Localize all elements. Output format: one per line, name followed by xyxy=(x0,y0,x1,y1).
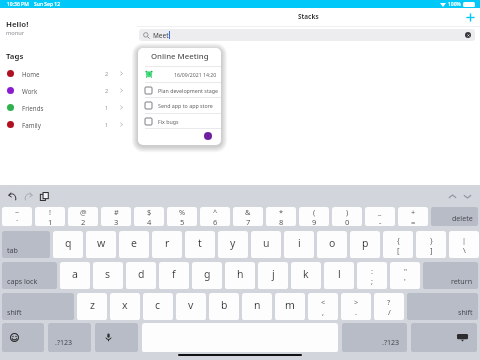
button[interactable]: @ xyxy=(68,207,98,226)
staticText: 2 xyxy=(105,70,109,78)
button[interactable]: Fix bugs xyxy=(138,113,221,129)
button[interactable]: tab xyxy=(2,231,50,258)
button[interactable]: Meet xyxy=(139,29,475,41)
button[interactable]: " xyxy=(390,262,420,289)
button[interactable]: ( xyxy=(299,207,329,226)
button[interactable]: % xyxy=(167,207,197,226)
button[interactable]: Redo xyxy=(21,185,35,207)
button[interactable]: Online Meeting xyxy=(138,48,221,145)
button[interactable]: q xyxy=(53,231,83,258)
button[interactable]: t xyxy=(185,231,215,258)
staticText: " xyxy=(404,266,407,276)
button[interactable]: $ xyxy=(134,207,164,226)
staticText: a xyxy=(72,267,78,281)
button[interactable]: Home xyxy=(0,65,137,82)
button[interactable]: : xyxy=(357,262,387,289)
button[interactable]: c xyxy=(143,293,173,320)
staticText: Tags xyxy=(6,51,24,62)
button[interactable]: m xyxy=(275,293,305,320)
staticText: Meet xyxy=(153,31,169,40)
button[interactable]: < xyxy=(308,293,338,320)
button[interactable]: j xyxy=(258,262,288,289)
staticText: caps lock xyxy=(7,276,38,286)
button[interactable]: a xyxy=(60,262,90,289)
button[interactable]: l xyxy=(324,262,354,289)
button[interactable]: r xyxy=(152,231,182,258)
button[interactable]: .?123 xyxy=(48,323,91,352)
button[interactable]: } xyxy=(416,231,446,258)
button[interactable]: | xyxy=(449,231,479,258)
button[interactable]: o xyxy=(317,231,347,258)
button[interactable]: delete xyxy=(431,207,478,226)
button[interactable]: * xyxy=(266,207,296,226)
button[interactable]: ) xyxy=(332,207,362,226)
staticText: m xyxy=(285,298,295,312)
staticText: 7 xyxy=(246,217,251,226)
staticText: h xyxy=(237,267,244,281)
button[interactable]: Dictate xyxy=(95,323,138,352)
button[interactable]: Paste xyxy=(37,185,51,207)
button[interactable]: # xyxy=(101,207,131,226)
button[interactable]: Next field xyxy=(460,185,474,207)
staticText: u xyxy=(263,236,270,250)
button[interactable]: caps lock xyxy=(2,262,57,289)
button[interactable]: n xyxy=(242,293,272,320)
button[interactable]: _ xyxy=(365,207,395,226)
staticText: | xyxy=(462,235,467,245)
button[interactable]: Emoji xyxy=(2,323,44,352)
button[interactable]: Add stack xyxy=(463,10,477,24)
staticText: .?123 xyxy=(382,337,400,347)
button[interactable]: u xyxy=(251,231,281,258)
button[interactable]: y xyxy=(218,231,248,258)
button[interactable]: d xyxy=(126,262,156,289)
button[interactable]: shift xyxy=(407,293,478,320)
button[interactable]: Clear search xyxy=(465,32,471,38)
staticText: .?123 xyxy=(55,337,73,347)
button[interactable]: ? xyxy=(374,293,404,320)
button[interactable]: i xyxy=(284,231,314,258)
button[interactable]: Hide keyboard xyxy=(411,323,477,352)
button[interactable]: b xyxy=(209,293,239,320)
button[interactable]: Previous field xyxy=(445,185,459,207)
staticText: { xyxy=(397,235,400,245)
staticText: 1 xyxy=(48,217,53,226)
button[interactable]: .?123 xyxy=(342,323,407,352)
button[interactable]: v xyxy=(176,293,206,320)
button[interactable]: g xyxy=(192,262,222,289)
button[interactable]: Family xyxy=(0,116,137,133)
button[interactable]: Work xyxy=(0,82,137,99)
button[interactable]: Plan development stage xyxy=(138,82,221,98)
button[interactable]: w xyxy=(86,231,116,258)
button[interactable]: return xyxy=(423,262,478,289)
button[interactable]: e xyxy=(119,231,149,258)
button[interactable]: x xyxy=(110,293,140,320)
staticText: f xyxy=(172,267,176,281)
button[interactable]: h xyxy=(225,262,255,289)
button[interactable]: ! xyxy=(35,207,65,226)
button[interactable]: ^ xyxy=(200,207,230,226)
button[interactable]: { xyxy=(383,231,413,258)
button[interactable]: > xyxy=(341,293,371,320)
button[interactable]: Send app to app store xyxy=(138,97,221,113)
button[interactable]: Undo xyxy=(5,185,19,207)
staticText: b xyxy=(221,298,228,312)
staticText: t xyxy=(198,236,202,250)
button[interactable]: & xyxy=(233,207,263,226)
button[interactable]: p xyxy=(350,231,380,258)
staticText: w xyxy=(97,236,106,250)
staticText: Home xyxy=(22,70,40,78)
button[interactable]: shift xyxy=(2,293,74,320)
staticText: 0 xyxy=(345,217,350,226)
staticText: ' xyxy=(404,276,406,286)
button[interactable]: ~ xyxy=(2,207,32,226)
staticText: x xyxy=(122,298,128,312)
staticText: 2 xyxy=(105,87,109,95)
button[interactable]: Friends xyxy=(0,99,137,116)
button[interactable]: s xyxy=(93,262,123,289)
button[interactable]: k xyxy=(291,262,321,289)
button[interactable]: f xyxy=(159,262,189,289)
button[interactable]: z xyxy=(77,293,107,320)
staticText: tab xyxy=(7,245,18,255)
button[interactable]: + xyxy=(398,207,428,226)
